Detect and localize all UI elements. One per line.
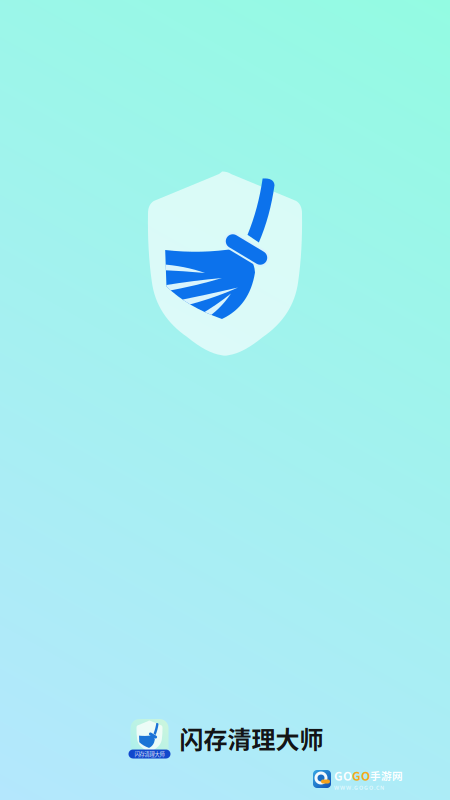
staticText: 闪存清理大师 (179, 721, 323, 755)
staticText: 手游网 (370, 768, 403, 783)
staticText: 闪存清理大师 (134, 750, 164, 758)
staticText: GO (334, 767, 352, 784)
staticText: GO (352, 767, 370, 784)
staticText: W W W . G O G O . C N (334, 784, 384, 791)
